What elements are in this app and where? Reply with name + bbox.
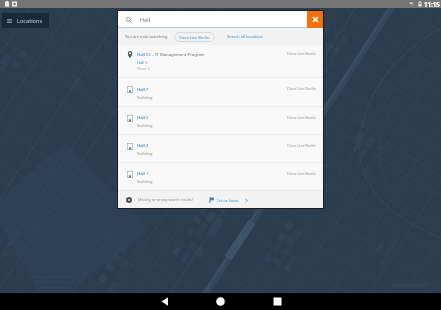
staticText: Missing or wrong search results? (138, 197, 194, 202)
button[interactable]: Let us know (209, 195, 249, 205)
staticText: Hall 4 (137, 143, 149, 149)
button[interactable]: Close search (307, 11, 323, 28)
staticText: Cisco Live Berlin (287, 115, 316, 120)
button[interactable]: Hall 7 (118, 78, 323, 107)
staticText: Cisco Live Berlin (287, 51, 316, 56)
button[interactable]: Hall 55 – IT Management Program (118, 45, 323, 78)
staticText: Cisco Live Berlin (287, 143, 316, 148)
button[interactable]: Locations (2, 13, 49, 28)
staticText: Let us know (217, 198, 239, 203)
staticText: Search all locations (227, 34, 263, 39)
button[interactable]: Search all locations (227, 32, 263, 41)
button[interactable]: Hall (118, 11, 307, 28)
staticText: Building (137, 95, 153, 100)
staticText: Locations (17, 17, 43, 25)
staticText: Hall 5 (137, 115, 149, 121)
staticText: Building (137, 151, 153, 156)
staticText: Building (137, 123, 153, 128)
staticText: Hall (140, 16, 150, 23)
staticText: Cisco Live Berlin (287, 171, 316, 176)
button[interactable]: Cisco Live Berlin (174, 32, 215, 42)
staticText: You are now searching (125, 34, 168, 39)
staticText: Cisco Live Berlin (179, 35, 210, 40)
staticText: 11:15 (424, 0, 440, 8)
staticText: Hall 55 – IT Management Program (137, 52, 205, 58)
staticText: Hall 1 (137, 171, 149, 177)
button[interactable]: Hall 4 (118, 135, 323, 163)
staticText: Hall 5 (137, 60, 148, 65)
staticText: Hall 7 (137, 87, 149, 93)
staticText: Floor 3 (137, 66, 150, 71)
staticText: Cisco Live Berlin (287, 86, 316, 91)
staticText: Building (137, 179, 153, 184)
button[interactable]: Hall 1 (118, 163, 323, 191)
button[interactable]: Hall 5 (118, 107, 323, 135)
